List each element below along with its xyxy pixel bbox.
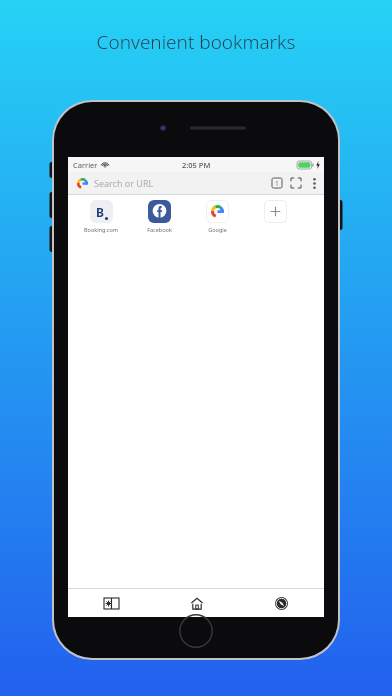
staticText: 2:05 PM <box>182 160 211 170</box>
staticText: Facebook <box>147 226 172 233</box>
button[interactable]: Add bookmark <box>254 195 296 223</box>
staticText: Search or URL <box>94 177 154 189</box>
button[interactable]: Search or URL <box>91 172 268 194</box>
button[interactable]: Bookmarks <box>68 589 154 617</box>
staticText: Booking.com <box>84 226 118 233</box>
button[interactable]: Facebook <box>138 195 180 233</box>
button[interactable]: Search engine Google <box>73 174 91 192</box>
staticText: B <box>96 204 104 220</box>
button[interactable]: Full screen <box>286 173 306 193</box>
button[interactable]: B <box>80 195 122 233</box>
staticText: Carrier <box>73 160 98 170</box>
button[interactable]: Browser <box>239 589 324 617</box>
button[interactable]: Tabs <box>268 173 286 193</box>
staticText: Google <box>208 226 227 233</box>
button[interactable]: Home <box>154 589 239 617</box>
staticText: 1 <box>275 179 279 188</box>
button[interactable]: More options <box>306 173 322 193</box>
button[interactable]: Google <box>196 195 238 233</box>
staticText: Convenient bookmarks <box>0 29 392 55</box>
